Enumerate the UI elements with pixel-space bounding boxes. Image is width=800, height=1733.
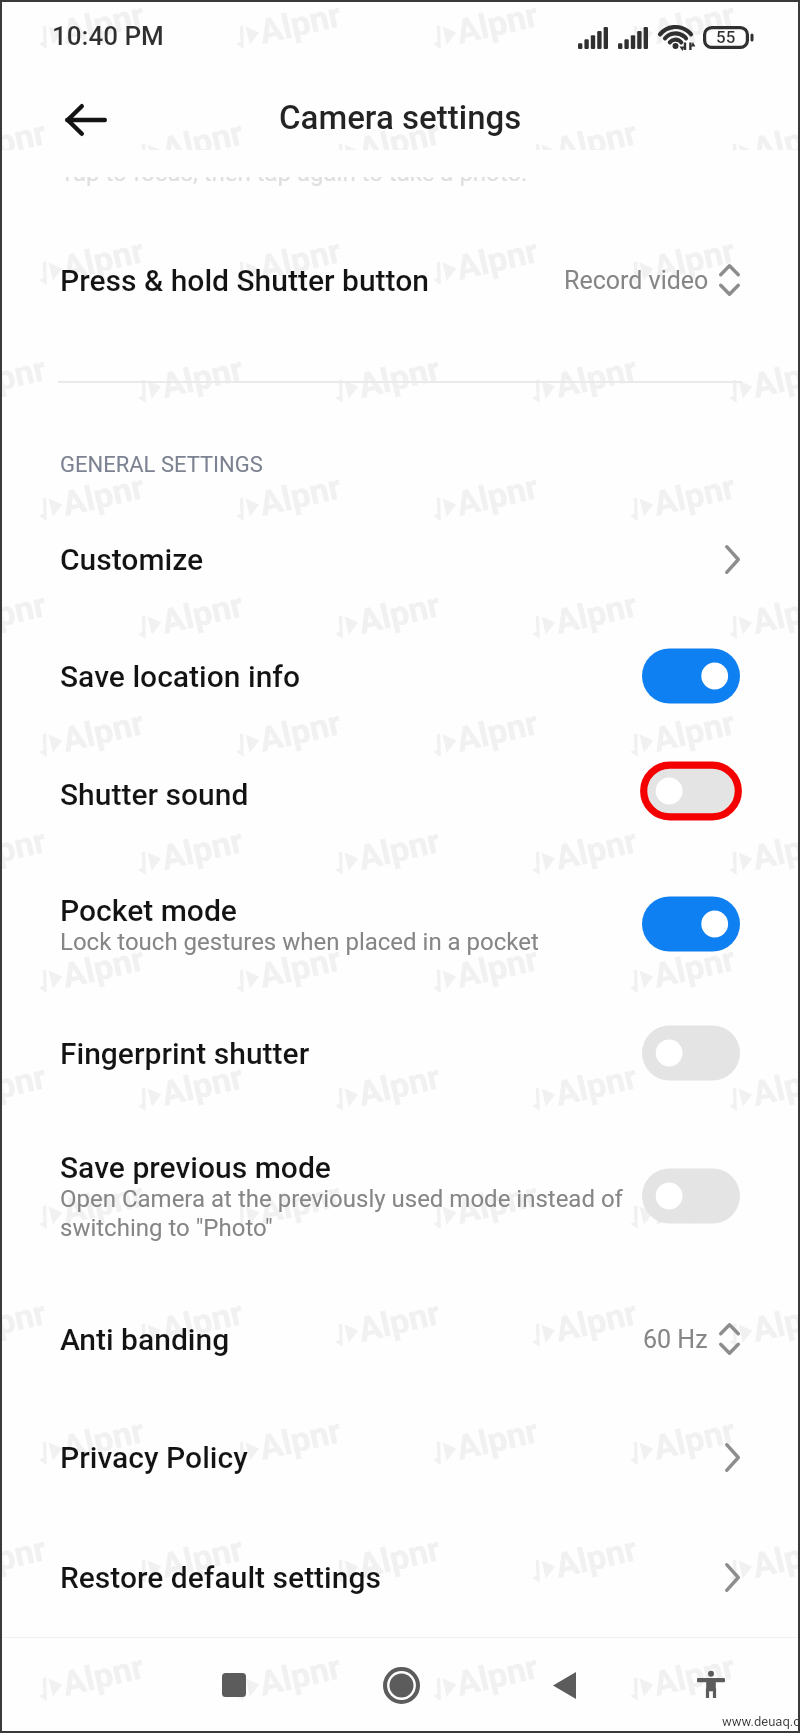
staticText: Alpnr — [157, 348, 247, 406]
staticText: Alpnr — [354, 584, 444, 642]
staticText: Alpnr — [551, 584, 641, 642]
button[interactable]: Toggle on — [635, 890, 747, 958]
button[interactable]: Privacy Policy — [0, 1412, 800, 1502]
staticText: Alpnr — [255, 702, 345, 760]
button[interactable]: Anti banding — [0, 1294, 800, 1384]
staticText: Alpnr — [0, 820, 50, 878]
staticText: Alpnr — [354, 1056, 444, 1114]
staticText: Alpnr — [0, 112, 50, 170]
button[interactable]: Save location info — [0, 631, 800, 721]
staticText: Lock touch gestures when placed in a poc… — [60, 928, 539, 956]
staticText: Alpnr — [0, 1056, 50, 1114]
staticText: Tap to focus, then tap again to take a p… — [60, 159, 528, 187]
staticText: Alpnr — [354, 1528, 444, 1586]
staticText: Alpnr — [157, 1292, 247, 1350]
staticText: www.deuaq.com — [722, 1714, 800, 1729]
staticText: Alpnr — [452, 1174, 542, 1232]
staticText: Alpnr — [354, 112, 444, 170]
button[interactable]: Accessibility — [671, 1645, 751, 1725]
button[interactable]: Toggle off — [635, 1162, 747, 1230]
staticText: Alpnr — [748, 820, 800, 878]
staticText: Alpnr — [58, 1646, 148, 1704]
staticText: Alpnr — [649, 0, 739, 52]
button[interactable]: Toggle off — [635, 757, 747, 825]
staticText: Alpnr — [255, 0, 345, 52]
staticText: Press & hold Shutter button — [60, 263, 429, 298]
button[interactable]: Pocket mode — [0, 870, 800, 978]
staticText: Alpnr — [452, 0, 542, 52]
staticText: Alpnr — [157, 1056, 247, 1114]
staticText: Alpnr — [452, 938, 542, 996]
staticText: 60 Hz — [643, 1325, 708, 1354]
button[interactable]: Customize — [0, 514, 800, 604]
staticText: Alpnr — [58, 0, 148, 52]
staticText: Alpnr — [452, 1646, 542, 1704]
staticText: Open Camera at the previously used mode … — [60, 1185, 626, 1242]
button[interactable]: Toggle on — [635, 642, 747, 710]
staticText: 10:40 PM — [52, 21, 164, 51]
staticText: Alpnr — [354, 1292, 444, 1350]
staticText: Alpnr — [0, 584, 50, 642]
staticText: Alpnr — [649, 466, 739, 524]
staticText: Alpnr — [58, 230, 148, 288]
staticText: Alpnr — [551, 1292, 641, 1350]
button[interactable]: Restore default settings — [0, 1532, 800, 1622]
staticText: Alpnr — [748, 584, 800, 642]
staticText: Alpnr — [551, 1056, 641, 1114]
staticText: Alpnr — [157, 820, 247, 878]
staticText: Alpnr — [255, 466, 345, 524]
button[interactable]: Press & hold Shutter button — [0, 235, 800, 325]
button[interactable]: Save previous mode — [0, 1128, 800, 1264]
staticText: Alpnr — [58, 1410, 148, 1468]
staticText: Save location info — [60, 659, 301, 694]
staticText: Alpnr — [748, 1292, 800, 1350]
staticText: Alpnr — [0, 1292, 50, 1350]
staticText: Alpnr — [255, 1174, 345, 1232]
staticText: Restore default settings — [60, 1560, 381, 1595]
staticText: Camera settings — [279, 98, 522, 137]
button[interactable]: Fingerprint shutter — [0, 1008, 800, 1098]
staticText: Alpnr — [58, 466, 148, 524]
button[interactable]: Back — [524, 1645, 604, 1725]
staticText: Alpnr — [649, 702, 739, 760]
staticText: Alpnr — [157, 584, 247, 642]
staticText: Alpnr — [58, 1174, 148, 1232]
staticText: Alpnr — [551, 112, 641, 170]
staticText: GENERAL SETTINGS — [60, 452, 263, 478]
staticText: Alpnr — [748, 348, 800, 406]
staticText: Alpnr — [354, 348, 444, 406]
staticText: Anti banding — [60, 1322, 230, 1357]
staticText: 55 — [716, 27, 736, 47]
staticText: Alpnr — [452, 1410, 542, 1468]
staticText: Alpnr — [649, 1410, 739, 1468]
button[interactable]: Back — [46, 80, 126, 160]
staticText: Shutter sound — [60, 777, 249, 812]
button[interactable]: Recent apps — [194, 1645, 274, 1725]
staticText: Alpnr — [0, 1528, 50, 1586]
staticText: Pocket mode — [60, 893, 237, 928]
staticText: Alpnr — [452, 230, 542, 288]
staticText: Alpnr — [0, 348, 50, 406]
button[interactable]: Home — [361, 1645, 441, 1725]
staticText: Alpnr — [551, 820, 641, 878]
staticText: Alpnr — [452, 702, 542, 760]
staticText: Alpnr — [58, 702, 148, 760]
staticText: Alpnr — [157, 112, 247, 170]
staticText: Alpnr — [649, 1174, 739, 1232]
staticText: Alpnr — [748, 1056, 800, 1114]
staticText: Save previous mode — [60, 1150, 331, 1185]
staticText: Alpnr — [157, 1528, 247, 1586]
button[interactable]: Toggle off — [635, 1019, 747, 1087]
staticText: Alpnr — [551, 1528, 641, 1586]
staticText: Fingerprint shutter — [60, 1036, 310, 1071]
staticText: Customize — [60, 542, 204, 577]
staticText: Alpnr — [255, 230, 345, 288]
staticText: Alpnr — [748, 1528, 800, 1586]
staticText: Alpnr — [255, 1646, 345, 1704]
staticText: Alpnr — [649, 938, 739, 996]
staticText: Alpnr — [255, 938, 345, 996]
staticText: Alpnr — [58, 938, 148, 996]
staticText: Alpnr — [649, 230, 739, 288]
staticText: Privacy Policy — [60, 1440, 248, 1475]
button[interactable]: Shutter sound — [0, 749, 800, 839]
